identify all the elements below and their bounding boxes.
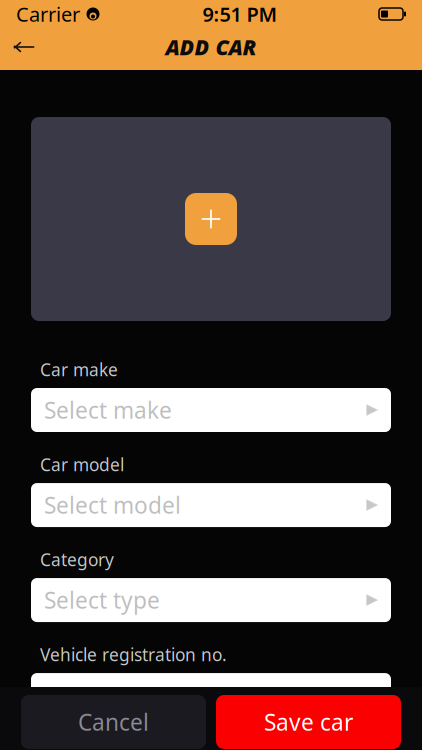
staticText: Car model [40,453,124,476]
button[interactable]: Back [2,28,46,66]
staticText: Enter no. [44,680,141,710]
button[interactable]: Enter no. [31,673,391,717]
staticText: Select make [44,395,172,425]
button[interactable]: Cancel [21,695,206,749]
staticText: Car make [40,358,118,381]
button[interactable]: Select type [31,578,391,622]
staticText: Save car [264,707,353,737]
staticText: 9:51 PM [202,1,277,27]
button[interactable]: Add photo [185,193,237,245]
button[interactable]: Save car [216,695,401,749]
button[interactable]: Select model [31,483,391,527]
staticText: Select type [44,585,160,615]
staticText: Cancel [78,707,149,737]
staticText: ADD CAR [165,33,256,61]
staticText: Select model [44,490,181,520]
button[interactable]: Select make [31,388,391,432]
staticText: Carrier [16,1,80,27]
staticText: Category [40,548,114,571]
staticText: Vehicle registration no. [40,643,227,666]
